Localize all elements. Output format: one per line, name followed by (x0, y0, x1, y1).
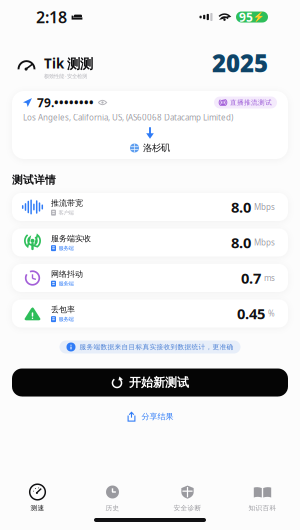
staticText: 0.45 (237, 304, 265, 323)
button[interactable]: 服务端实收 (12, 228, 288, 256)
staticText: 分享结果 (141, 412, 173, 421)
staticText: 知识百科 (248, 504, 276, 512)
button[interactable]: 历史 (75, 473, 150, 510)
staticText: 历史 (105, 504, 119, 512)
button[interactable]: 推流带宽 (12, 193, 288, 221)
staticText: 服务端 (58, 280, 73, 287)
staticText: 服务端数据来自目标真实接收到数据统计，更准确 (79, 343, 233, 351)
button[interactable]: 测速 (0, 473, 75, 510)
button[interactable]: 网络抖动 (12, 264, 288, 292)
button[interactable]: 丢包率 (12, 299, 288, 327)
staticText: 服务端 (58, 245, 73, 251)
staticText: ms (264, 273, 275, 283)
staticText: 客户端 (58, 209, 73, 216)
staticText: 服务端 (58, 316, 73, 322)
staticText: 95 (239, 9, 253, 25)
staticText: Mbps (254, 237, 275, 248)
staticText: 网络抖动 (51, 269, 83, 279)
staticText: Mbps (254, 202, 275, 212)
button[interactable]: 分享结果 (126, 409, 173, 423)
staticText: 极致性能 · 安全检测 (44, 72, 87, 79)
staticText: Tik 测测 (44, 55, 93, 72)
staticText: % (268, 308, 275, 319)
button[interactable]: 安全诊断 (150, 473, 225, 510)
button[interactable]: 开始新测试 (12, 368, 288, 396)
staticText: ⚡ (253, 12, 265, 22)
staticText: 洛杉矶 (143, 142, 170, 154)
staticText: 79.•••••••• (37, 94, 94, 110)
staticText: 直播推流测试 (230, 98, 272, 107)
staticText: 8.0 (231, 197, 251, 217)
staticText: 安全诊断 (173, 504, 201, 512)
staticText: 0.7 (241, 268, 261, 288)
staticText: 开始新测试 (129, 375, 189, 390)
staticText: 丢包率 (51, 305, 75, 314)
staticText: 测速 (30, 504, 44, 512)
staticText: 2025 (212, 47, 268, 79)
staticText: Los Angeles, California, US, (AS60068 Da… (23, 112, 233, 123)
staticText: 2:18 (36, 6, 67, 28)
staticText: 测试详情 (12, 173, 56, 186)
staticText: 8.0 (231, 233, 251, 252)
staticText: 服务端实收 (51, 234, 91, 243)
staticText: 推流带宽 (51, 198, 83, 208)
button[interactable]: 知识百科 (225, 473, 300, 510)
